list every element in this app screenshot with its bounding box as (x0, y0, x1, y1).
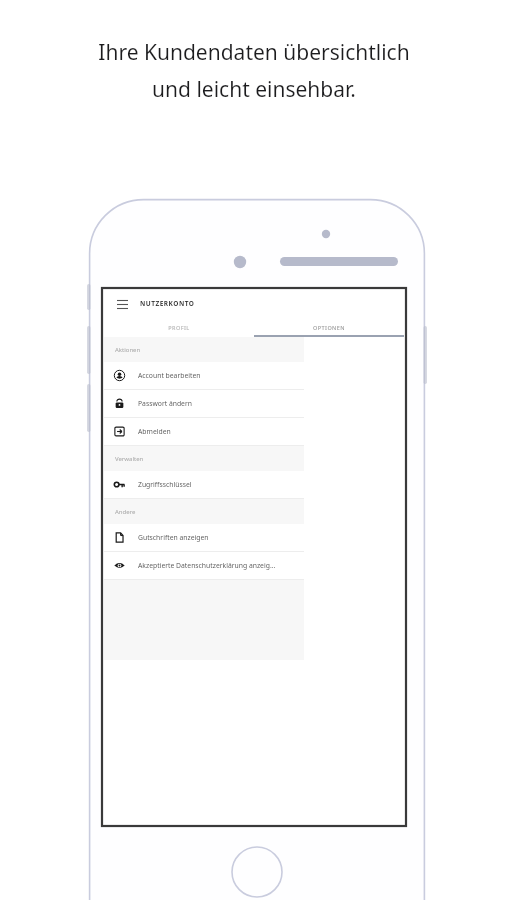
staticText: Akzeptierte Datenschutzerklärung anzeig.… (138, 561, 276, 570)
staticText: Verwalten (115, 455, 144, 463)
button[interactable]: Passwort ändern (104, 390, 304, 417)
button[interactable]: Akzeptierte Datenschutzerklärung anzeig.… (104, 552, 304, 579)
button[interactable]: Menü (104, 290, 404, 317)
button[interactable]: PROFIL (104, 317, 254, 337)
staticText: Ihre Kundendaten übersichtlich (98, 38, 410, 67)
button[interactable]: OPTIONEN (254, 317, 404, 337)
staticText: PROFIL (168, 324, 190, 331)
button[interactable]: Account bearbeiten (104, 362, 304, 389)
staticText: Gutschriften anzeigen (138, 533, 209, 542)
staticText: Zugriffsschlüssel (138, 480, 192, 489)
button[interactable]: Abmelden (104, 418, 304, 445)
staticText: Passwort ändern (138, 399, 192, 408)
button[interactable]: Menü (115, 297, 129, 311)
staticText: und leicht einsehbar. (152, 75, 356, 104)
button[interactable]: Zugriffsschlüssel (104, 471, 304, 498)
staticText: OPTIONEN (313, 324, 345, 331)
staticText: Aktionen (115, 346, 141, 354)
staticText: NUTZERKONTO (140, 299, 195, 308)
staticText: Abmelden (138, 427, 171, 436)
staticText: Andere (115, 508, 136, 516)
button[interactable]: Gutschriften anzeigen (104, 524, 304, 551)
staticText: Account bearbeiten (138, 371, 201, 380)
